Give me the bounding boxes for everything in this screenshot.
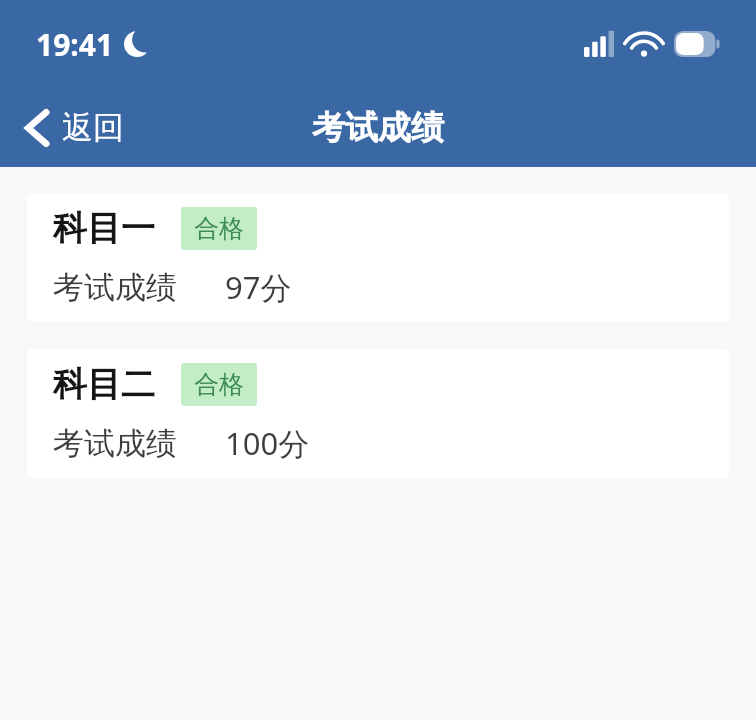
- staticText: 19:41: [36, 24, 114, 65]
- other: Back: [26, 111, 48, 145]
- staticText: 97分: [225, 266, 292, 308]
- staticText: 科目一: [53, 207, 155, 250]
- staticText: 返回: [62, 108, 124, 147]
- button[interactable]: 科目一: [27, 193, 729, 322]
- button[interactable]: Back: [16, 100, 134, 155]
- staticText: 考试成绩: [53, 268, 177, 307]
- staticText: 考试成绩: [53, 424, 177, 463]
- staticText: 考试成绩: [312, 107, 444, 149]
- staticText: 合格: [194, 369, 244, 400]
- staticText: 合格: [194, 213, 244, 244]
- button[interactable]: 科目二: [27, 349, 729, 478]
- staticText: 科目二: [53, 363, 155, 406]
- staticText: 100分: [225, 422, 310, 464]
